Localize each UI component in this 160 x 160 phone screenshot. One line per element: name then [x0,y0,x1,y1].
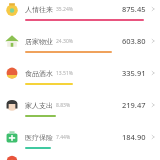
staticText: 219.47 [122,100,146,110]
staticText: 医疗保险 [25,133,53,142]
staticText: 24.30% [56,38,73,45]
other: 医疗保险 [4,129,20,145]
staticText: 7.44% [56,134,71,141]
staticText: 人情往来 [25,5,53,14]
staticText: 13.51% [56,70,73,77]
button[interactable]: 医疗保险 [0,122,160,154]
button[interactable]: 食品酒水 [0,58,160,90]
staticText: 335.91 [122,68,146,78]
button[interactable]: 居家物业 [0,26,160,58]
staticText: 家人支出 [25,101,53,110]
button[interactable]: 人情往来 [0,0,160,26]
staticText: 食品酒水 [25,69,53,78]
other: 食品酒水 [4,65,20,81]
staticText: 居家物业 [25,37,53,46]
staticText: 875.45 [122,4,146,14]
staticText: 35.24% [56,6,73,13]
button[interactable]: 家人支出 [0,90,160,122]
staticText: 8.83% [56,102,71,109]
button[interactable]: 其他支出 [0,154,160,160]
other: 居家物业 [4,33,20,49]
staticText: 603.80 [122,36,146,46]
staticText: 184.90 [122,132,146,142]
other: 人情往来 [4,1,20,17]
other: 家人支出 [4,97,20,113]
